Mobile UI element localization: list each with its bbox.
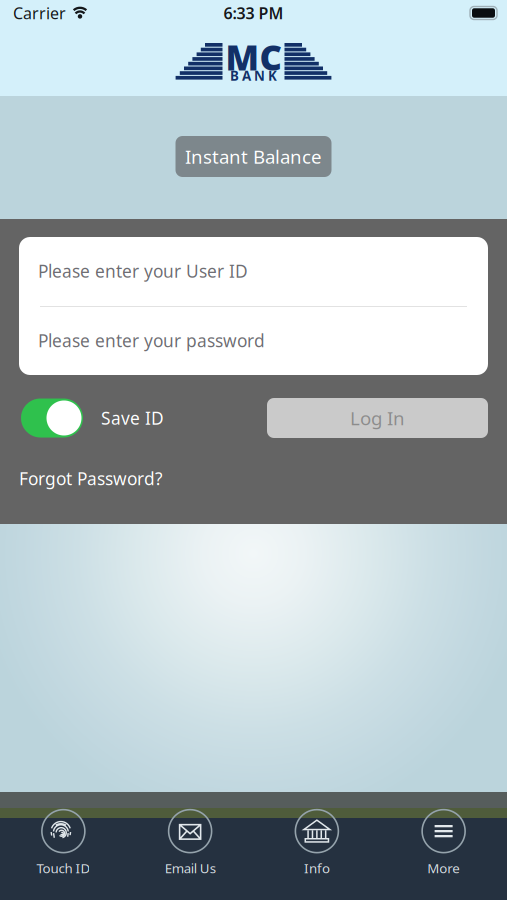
button[interactable]: More xyxy=(380,809,507,877)
button[interactable]: Log In xyxy=(267,398,488,438)
button[interactable]: Instant Balance xyxy=(175,136,331,177)
button[interactable]: Forgot Password? xyxy=(19,438,488,498)
staticText: Please enter your User ID xyxy=(38,259,248,282)
staticText: B A N K xyxy=(230,67,277,84)
staticText: Instant Balance xyxy=(185,144,322,169)
staticText: More xyxy=(427,859,460,877)
staticText: Forgot Password? xyxy=(19,467,163,490)
staticText: MC xyxy=(225,34,281,80)
staticText: 6:33 PM xyxy=(223,2,283,24)
button[interactable]: Save ID xyxy=(19,398,164,437)
staticText: Please enter your password xyxy=(38,329,265,352)
staticText: Save ID xyxy=(101,406,164,429)
button[interactable]: Touch ID xyxy=(0,809,127,877)
staticText: Info xyxy=(304,859,330,877)
button[interactable]: Email Us xyxy=(127,809,254,877)
button[interactable]: Info xyxy=(253,809,380,877)
staticText: Log In xyxy=(350,406,405,430)
staticText: Email Us xyxy=(165,859,216,877)
staticText: Touch ID xyxy=(36,859,90,877)
staticText: Carrier xyxy=(13,2,66,24)
